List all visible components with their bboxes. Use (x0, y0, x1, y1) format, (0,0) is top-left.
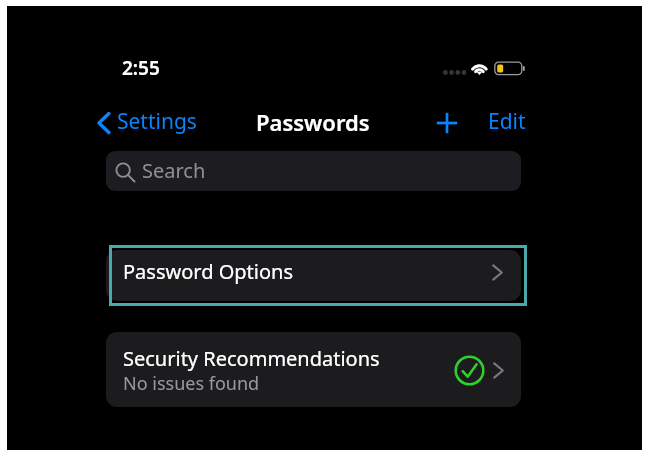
staticText: Settings (117, 107, 197, 136)
staticText: 2:55 (122, 55, 160, 81)
staticText: Search (142, 157, 206, 184)
button[interactable]: Search (106, 151, 521, 191)
staticText: Security Recommendations (123, 345, 380, 372)
button[interactable]: Add password (432, 108, 462, 138)
button[interactable]: Password Options (106, 250, 521, 301)
staticText: No issues found (123, 371, 260, 396)
button[interactable]: Edit (486, 106, 528, 139)
staticText: Passwords (256, 107, 370, 137)
staticText: Password Options (123, 258, 293, 285)
button[interactable]: Settings (93, 104, 201, 141)
staticText: Edit (488, 107, 526, 136)
button[interactable]: Security Recommendations (106, 332, 521, 407)
